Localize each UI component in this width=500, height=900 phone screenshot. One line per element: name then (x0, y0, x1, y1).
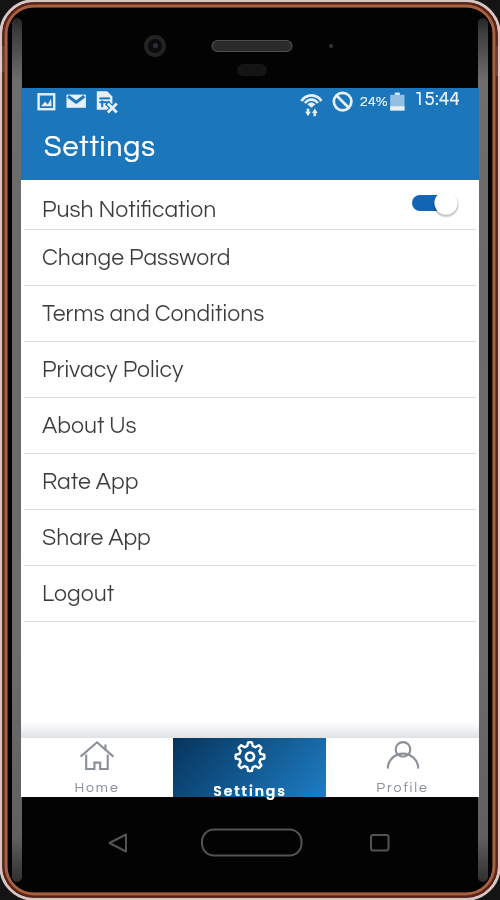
staticText: 24% (360, 95, 388, 109)
button[interactable]: Logout (21, 566, 479, 622)
button[interactable]: Privacy Policy (21, 342, 479, 398)
staticText: Share App (42, 526, 151, 550)
button[interactable]: About Us (21, 398, 479, 454)
staticText: Rate App (42, 470, 139, 494)
button[interactable]: Settings (173, 738, 326, 797)
button[interactable]: Rate App (21, 454, 479, 510)
button[interactable]: Push notification toggle (412, 190, 458, 216)
staticText: Profile (376, 781, 429, 795)
staticText: 15:44 (414, 90, 460, 109)
staticText: Logout (42, 582, 115, 606)
staticText: Push Notification (42, 198, 217, 222)
button[interactable]: Push Notification (21, 180, 479, 230)
button[interactable]: Profile (326, 738, 479, 797)
button[interactable]: Share App (21, 510, 479, 566)
staticText: Privacy Policy (42, 358, 184, 382)
staticText: Settings (213, 781, 287, 801)
staticText: Change Password (42, 246, 231, 270)
button[interactable]: Home (21, 738, 173, 797)
staticText: Settings (44, 133, 156, 162)
staticText: About Us (42, 414, 137, 438)
button[interactable]: Terms and Conditions (21, 286, 479, 342)
staticText: Home (74, 781, 120, 795)
staticText: Terms and Conditions (42, 302, 265, 326)
button[interactable]: Change Password (21, 230, 479, 286)
